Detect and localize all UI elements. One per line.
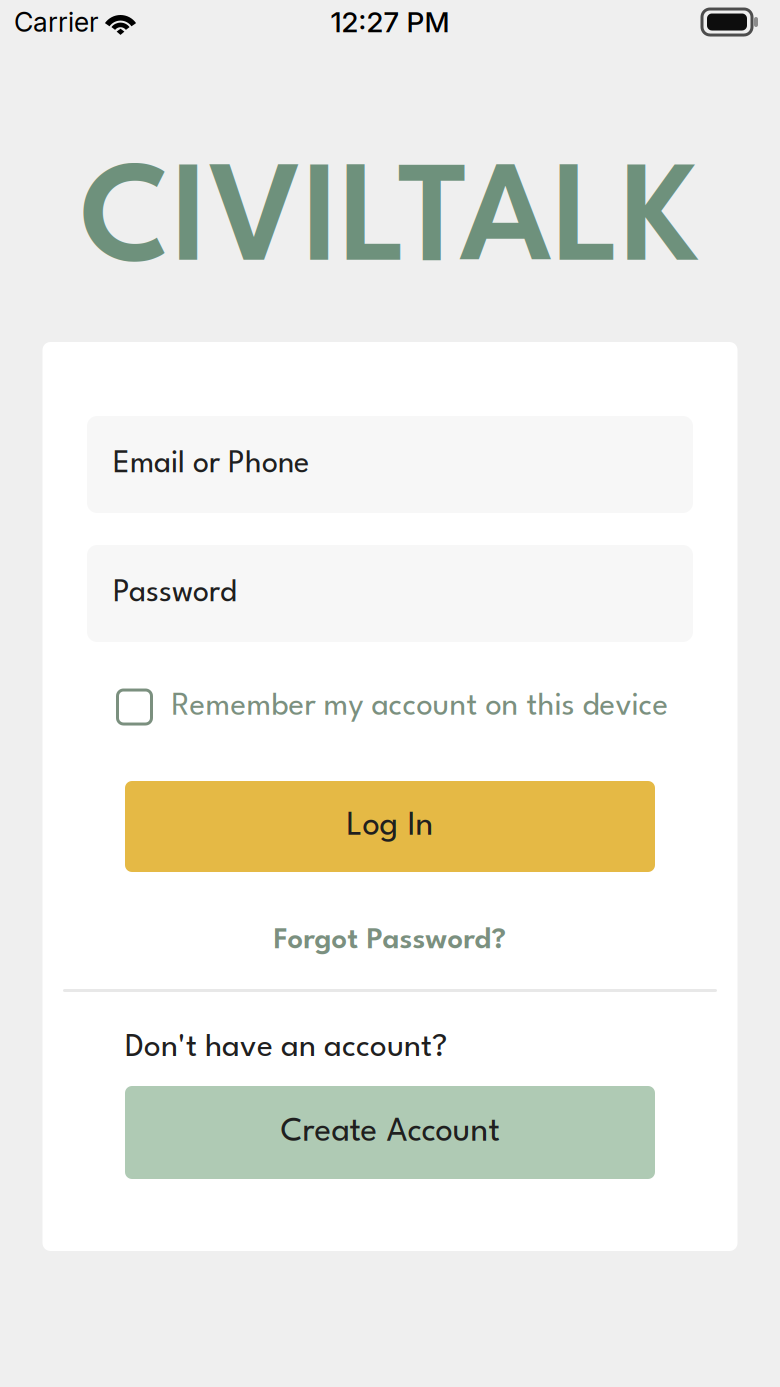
button[interactable]: Forgot Password? [273, 912, 506, 970]
staticText: Remember my account on this device [171, 692, 668, 722]
staticText: Carrier [14, 6, 99, 38]
staticText: Don't have an account? [125, 1033, 447, 1063]
button[interactable]: Remember my account on this device [88, 685, 691, 729]
staticText: Password [113, 579, 237, 608]
staticText: Email or Phone [113, 450, 309, 479]
staticText: 12:27 PM [330, 5, 449, 39]
staticText: Log In [346, 811, 433, 842]
button[interactable]: Log In [125, 781, 655, 872]
staticText: Create Account [280, 1117, 499, 1148]
button[interactable]: Create Account [125, 1086, 655, 1179]
staticText: Forgot Password? [273, 927, 506, 955]
staticText: CIVILTALK [79, 159, 700, 291]
